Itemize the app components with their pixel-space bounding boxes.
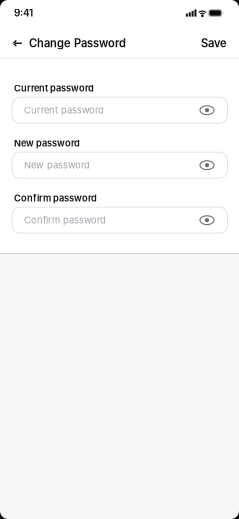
staticText: Confirm password [14,193,97,204]
staticText: New password [24,160,90,171]
button[interactable]: Save [201,37,227,50]
staticText: New password [14,138,80,149]
staticText: 9:41 [14,7,33,19]
staticText: Save [201,37,227,50]
button[interactable]: Show password [199,215,214,226]
staticText: Change Password [29,37,126,50]
button[interactable]: Back [12,40,29,47]
button[interactable]: Show password [199,105,214,116]
staticText: Confirm password [24,215,106,226]
staticText: Current password [24,105,104,116]
staticText: Current password [14,83,94,94]
button[interactable]: Show password [199,160,214,171]
